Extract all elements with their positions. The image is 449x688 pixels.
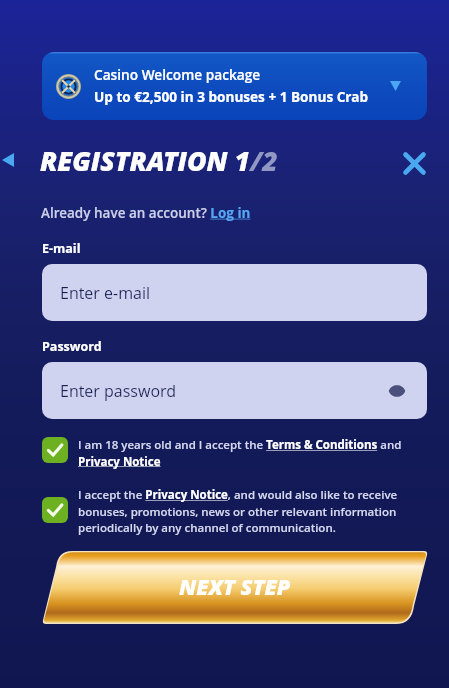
button[interactable]: Show password xyxy=(383,377,411,405)
staticText: Enter password xyxy=(60,380,177,402)
button[interactable]: Back xyxy=(0,146,22,174)
button[interactable]: Expand xyxy=(382,73,408,99)
staticText: Up to €2,500 in 3 bonuses + 1 Bonus Crab xyxy=(94,87,369,106)
staticText: REGISTRATION 1/2 xyxy=(40,143,278,179)
button[interactable]: I accept the Privacy Notice, and would a… xyxy=(42,487,427,535)
staticText: E-mail xyxy=(42,240,81,257)
button[interactable]: Enter password xyxy=(42,362,427,419)
button[interactable]: Casino Welcome package xyxy=(42,52,427,120)
staticText: Password xyxy=(42,338,102,355)
button[interactable]: NEXT STEP xyxy=(42,551,428,624)
staticText: I am 18 years old and I accept the Terms… xyxy=(78,437,427,469)
button[interactable]: Close xyxy=(396,145,432,181)
staticText: Enter e-mail xyxy=(60,282,151,304)
button[interactable]: Already have an account? Log in xyxy=(41,204,251,222)
button[interactable]: I am 18 years old and I accept the Terms… xyxy=(42,437,427,469)
staticText: NEXT STEP xyxy=(179,572,291,602)
staticText: I accept the Privacy Notice, and would a… xyxy=(78,487,427,535)
staticText: Casino Welcome package xyxy=(94,65,261,84)
button[interactable]: Enter e-mail xyxy=(42,264,427,321)
